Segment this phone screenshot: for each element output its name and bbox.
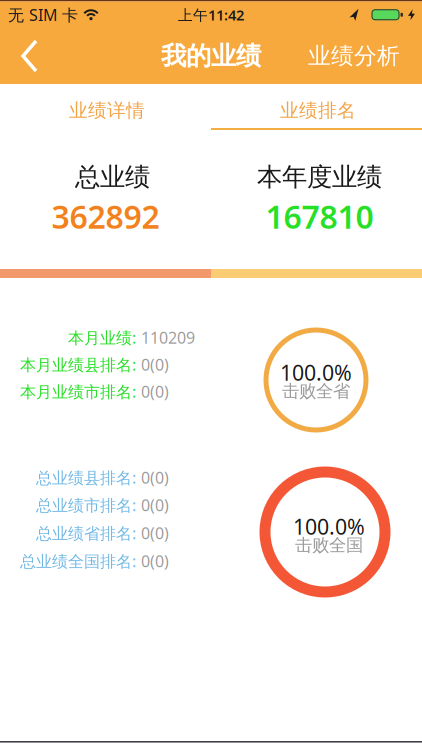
staticText: 本月业绩县排名: — [20, 354, 136, 375]
staticText: 362892 — [51, 195, 159, 238]
staticText: 本月业绩市排名: — [20, 381, 136, 402]
staticText: 业绩排名 — [280, 99, 356, 122]
staticText: 0(0) — [141, 381, 169, 402]
staticText: 总业绩市排名: — [36, 494, 136, 516]
staticText: 110209 — [141, 327, 195, 348]
staticText: 总业绩 — [75, 161, 150, 192]
staticText: 我的业绩 — [161, 40, 261, 71]
staticText: 本月业绩: — [68, 327, 136, 348]
staticText: 0(0) — [141, 354, 169, 375]
staticText: 167810 — [265, 195, 373, 238]
staticText: 业绩分析 — [308, 42, 400, 70]
staticText: 0(0) — [141, 467, 169, 488]
staticText: 本年度业绩 — [257, 161, 382, 192]
staticText: 0(0) — [141, 550, 169, 572]
staticText: 无 SIM 卡 — [8, 4, 78, 25]
staticText: 业绩详情 — [69, 99, 145, 122]
staticText: 0(0) — [141, 522, 169, 544]
staticText: 击败全国 — [295, 534, 363, 556]
staticText: 总业绩全国排名: — [20, 550, 136, 572]
staticText: 100.0% — [280, 358, 352, 386]
button[interactable]: Back — [0, 28, 56, 84]
staticText: 100.0% — [293, 512, 365, 540]
staticText: 0(0) — [141, 494, 169, 516]
staticText: 总业绩省排名: — [36, 522, 136, 544]
staticText: 总业绩县排名: — [36, 467, 136, 488]
button[interactable]: 业绩排名 — [211, 84, 422, 128]
button[interactable]: 业绩分析 — [308, 28, 422, 84]
staticText: 击败全省 — [282, 380, 350, 402]
button[interactable]: 业绩详情 — [0, 84, 211, 128]
staticText: 上午11:42 — [178, 5, 244, 24]
